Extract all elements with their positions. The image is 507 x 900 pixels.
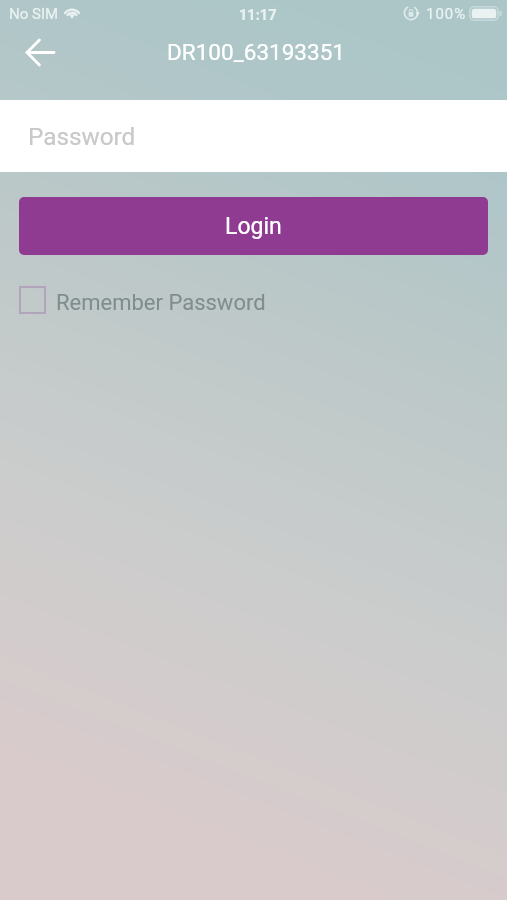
staticText: DR100_63193351	[167, 39, 345, 65]
staticText: 11:17	[239, 6, 277, 23]
staticText: 100%	[426, 5, 467, 23]
button[interactable]: Remember Password	[19, 286, 266, 314]
staticText: No SIM	[9, 5, 59, 23]
button[interactable]: Password	[0, 100, 507, 172]
button[interactable]: Back	[14, 21, 67, 83]
staticText: Remember Password	[56, 290, 266, 316]
staticText: Password	[28, 122, 136, 150]
button[interactable]: Login	[19, 197, 488, 255]
staticText: Login	[225, 213, 282, 240]
